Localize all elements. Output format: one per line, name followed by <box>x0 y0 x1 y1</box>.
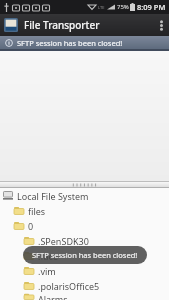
button[interactable]: files <box>0 203 169 218</box>
staticText: .vim <box>38 265 56 277</box>
button[interactable]: .face <box>0 248 169 263</box>
staticText: 75% <box>117 3 129 11</box>
staticText: Alarms <box>38 293 68 300</box>
button[interactable]: .polarisOffice5 <box>0 278 169 293</box>
staticText: SFTP session has been closed! <box>17 38 123 48</box>
button[interactable]: SFTP session has been closed! <box>0 36 169 49</box>
button[interactable]: File Transporter app icon <box>4 18 100 32</box>
button[interactable]: 0 <box>0 218 169 233</box>
staticText: File Transporter <box>24 18 100 32</box>
button[interactable]: .vim <box>0 263 169 278</box>
button[interactable]: More options <box>153 14 169 36</box>
button[interactable]: Resize panes <box>0 181 169 188</box>
staticText: Local File System <box>17 190 89 202</box>
staticText: .polarisOffice5 <box>38 280 100 292</box>
staticText: 8:09 PM <box>137 2 166 12</box>
staticText: files <box>28 205 46 217</box>
button[interactable]: Alarms <box>0 293 169 300</box>
staticText: .face <box>38 250 58 262</box>
button[interactable]: .SPenSDK30 <box>0 233 169 248</box>
staticText: 0 <box>28 220 34 232</box>
button[interactable]: Local File System <box>0 188 169 203</box>
staticText: SFTP session has been closed! <box>32 250 138 260</box>
staticText: LTE <box>98 5 105 10</box>
staticText: .SPenSDK30 <box>38 235 89 247</box>
